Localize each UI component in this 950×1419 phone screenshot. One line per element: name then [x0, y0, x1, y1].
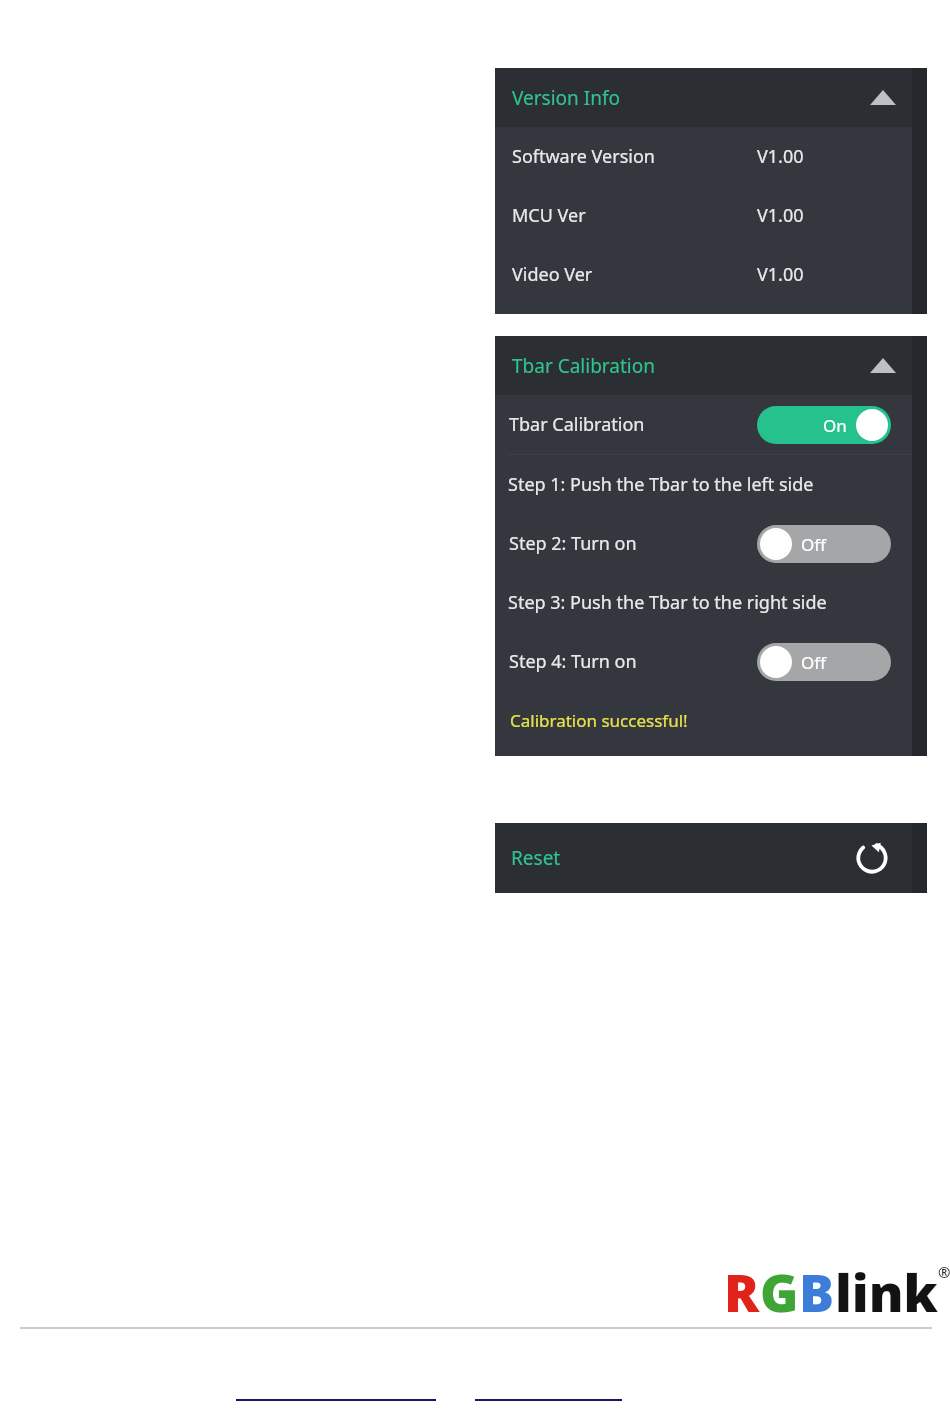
staticText: Step 4: Turn on: [509, 649, 637, 674]
button[interactable]: Version Info: [495, 68, 927, 127]
staticText: Off: [801, 651, 826, 674]
button[interactable]: Reset: [495, 823, 927, 893]
staticText: Step 3: Push the Tbar to the right side: [508, 590, 827, 615]
button[interactable]: Off: [757, 525, 891, 563]
staticText: Off: [801, 533, 826, 556]
button[interactable]: On: [757, 406, 891, 444]
staticText: V1.00: [757, 262, 804, 287]
staticText: Reset: [511, 845, 561, 871]
staticText: Calibration successful!: [510, 709, 688, 732]
staticText: Step 2: Turn on: [509, 531, 637, 556]
staticText: MCU Ver: [512, 203, 586, 228]
staticText: V1.00: [757, 203, 804, 228]
button[interactable]: MCU Ver: [495, 186, 927, 245]
staticText: Tbar Calibration: [512, 353, 655, 379]
staticText: G: [760, 1256, 799, 1327]
staticText: R: [724, 1256, 760, 1327]
staticText: V1.00: [757, 144, 804, 169]
staticText: ®: [938, 1262, 950, 1282]
button[interactable]: Video Ver: [495, 245, 927, 304]
button[interactable]: Off: [757, 643, 891, 681]
button[interactable]: Software Version: [495, 127, 927, 186]
staticText: B: [799, 1256, 835, 1327]
staticText: link: [835, 1256, 938, 1327]
staticText: Step 1: Push the Tbar to the left side: [508, 472, 814, 497]
staticText: Video Ver: [512, 262, 593, 287]
staticText: Tbar Calibration: [509, 412, 645, 437]
button[interactable]: Tbar Calibration: [495, 336, 927, 395]
staticText: On: [823, 414, 847, 437]
button[interactable]: Reset: [853, 839, 891, 877]
other: Collapse: [870, 358, 896, 373]
staticText: Version Info: [512, 85, 620, 111]
staticText: Software Version: [512, 144, 655, 169]
other: Collapse: [870, 90, 896, 105]
